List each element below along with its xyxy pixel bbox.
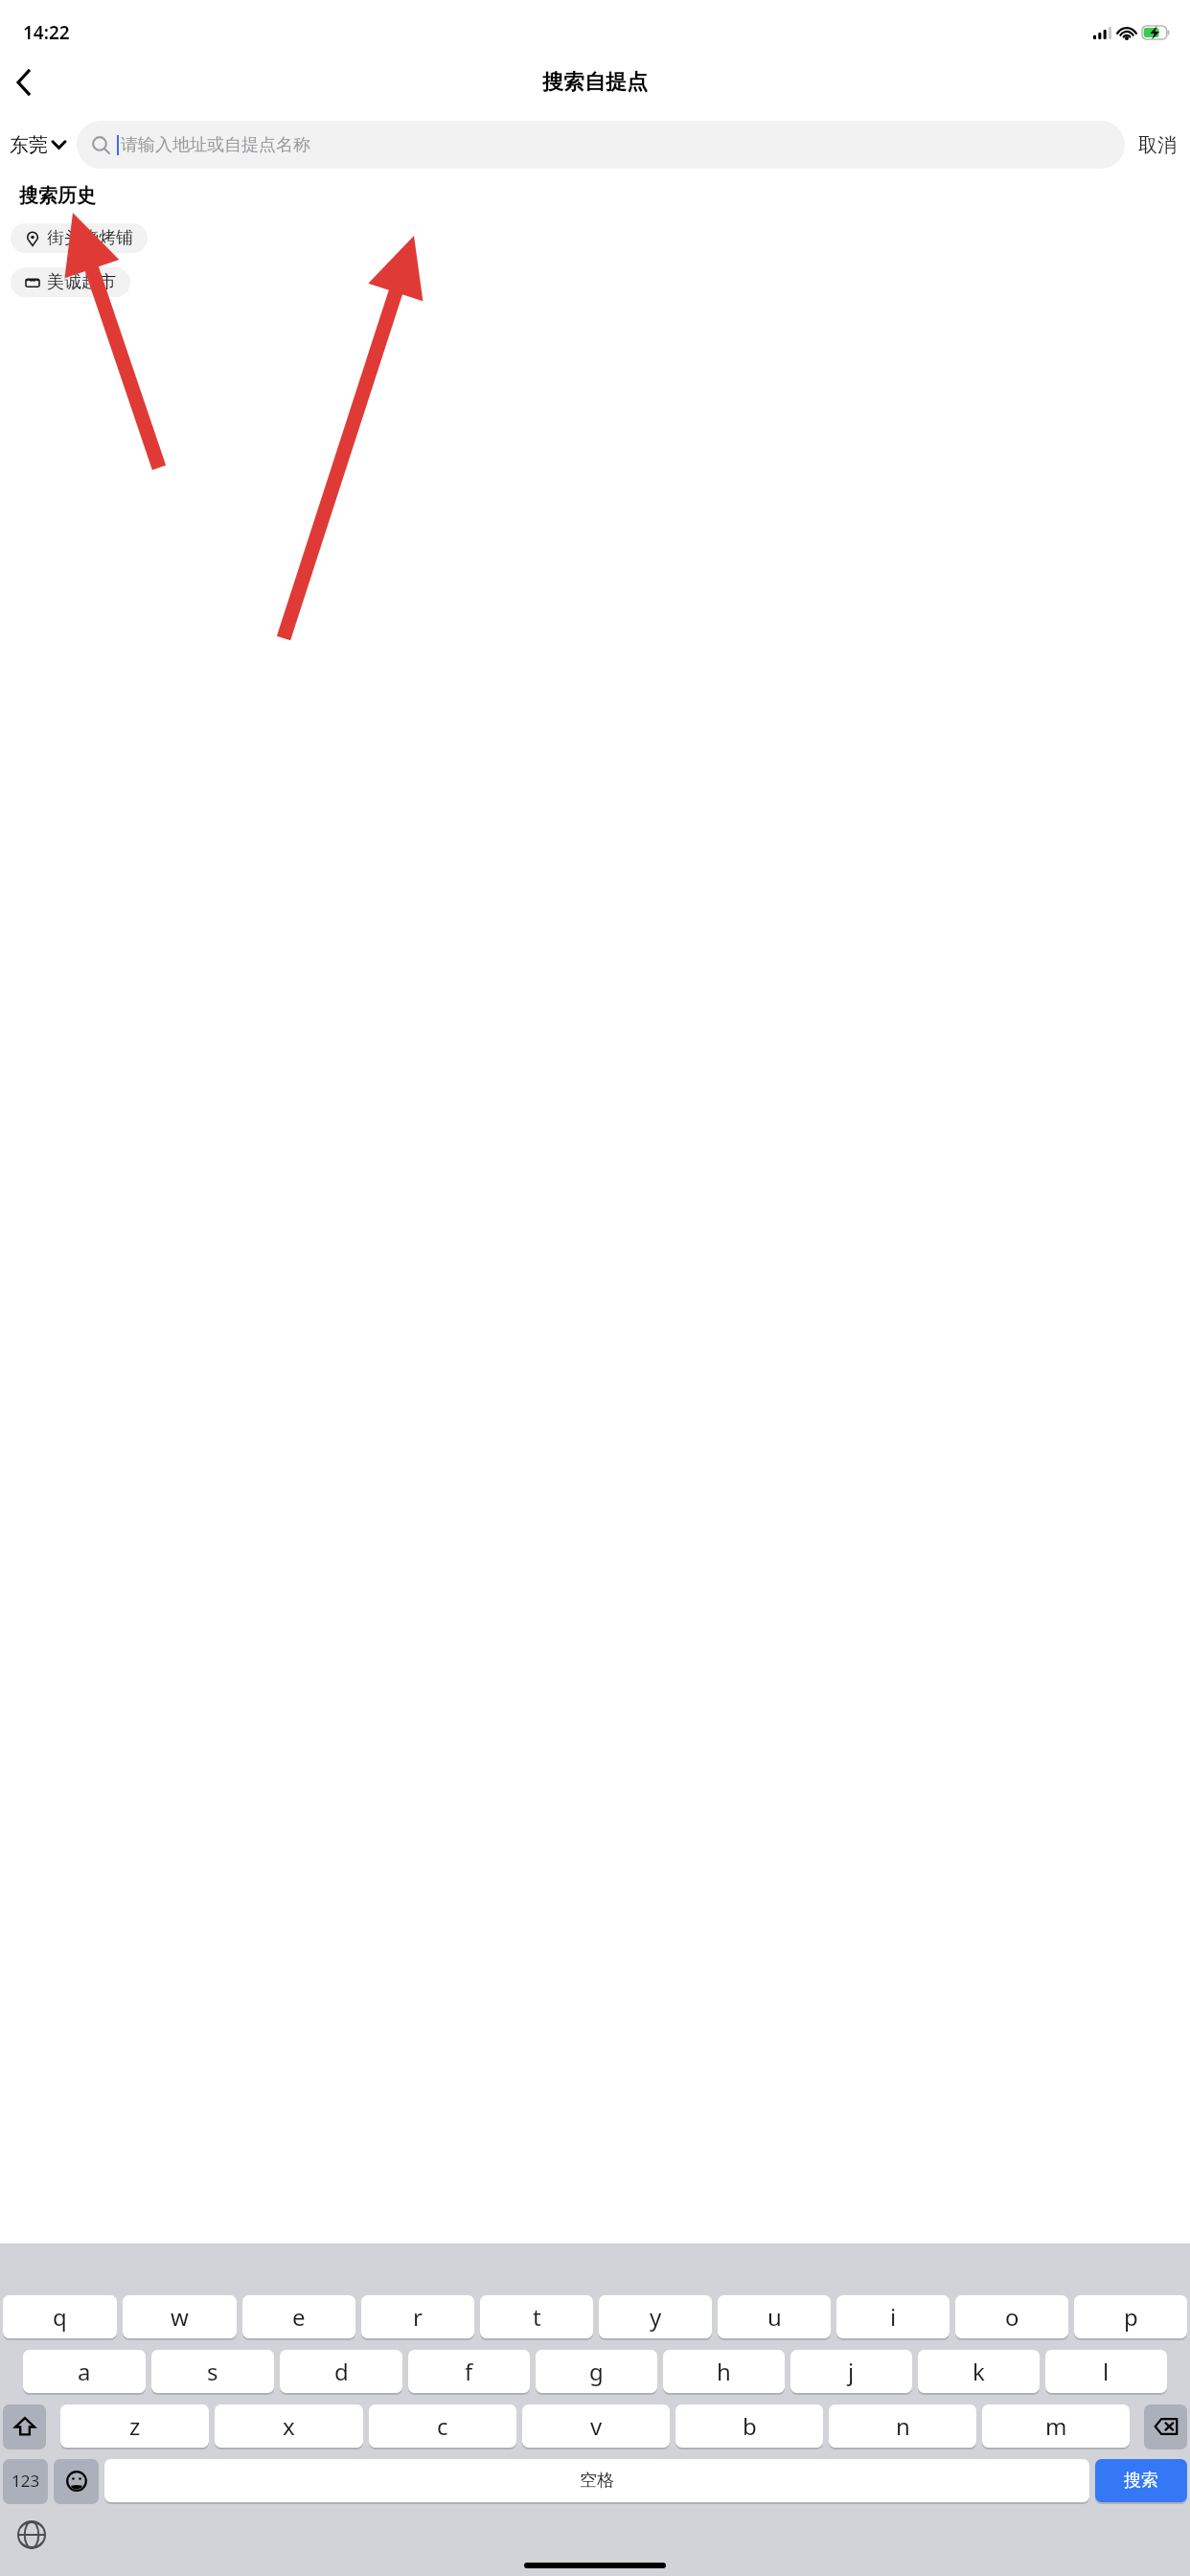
button[interactable]: g xyxy=(536,2350,657,2393)
staticText: m xyxy=(1045,2410,1067,2442)
button[interactable]: Back xyxy=(0,59,46,105)
staticText: b xyxy=(743,2410,757,2442)
button[interactable]: Backspace xyxy=(1144,2404,1187,2448)
staticText: u xyxy=(767,2301,782,2333)
staticText: 14:22 xyxy=(23,20,70,45)
button[interactable]: Change keyboard language xyxy=(15,2518,48,2551)
staticText: z xyxy=(129,2410,141,2442)
button[interactable]: w xyxy=(123,2295,237,2338)
button[interactable]: 123 xyxy=(3,2459,48,2502)
staticText: y xyxy=(650,2301,662,2333)
staticText: o xyxy=(1005,2301,1019,2333)
staticText: j xyxy=(848,2356,855,2387)
staticText: h xyxy=(717,2356,731,2387)
staticText: 取消 xyxy=(1138,133,1177,157)
button[interactable]: o xyxy=(955,2295,1068,2338)
button[interactable]: u xyxy=(718,2295,831,2338)
button[interactable]: e xyxy=(242,2295,355,2338)
staticText: q xyxy=(53,2301,67,2333)
button[interactable]: 请输入地址或自提点名称 xyxy=(77,121,1125,169)
button[interactable]: k xyxy=(918,2350,1040,2393)
staticText: c xyxy=(437,2410,448,2442)
staticText: 街头烧烤铺 xyxy=(47,227,133,249)
staticText: l xyxy=(1103,2356,1110,2387)
button[interactable]: h xyxy=(663,2350,785,2393)
staticText: a xyxy=(78,2356,91,2387)
button[interactable]: c xyxy=(369,2404,516,2448)
staticText: v xyxy=(590,2410,603,2442)
button[interactable]: d xyxy=(280,2350,402,2393)
button[interactable]: m xyxy=(982,2404,1130,2448)
staticText: n xyxy=(896,2410,910,2442)
staticText: t xyxy=(533,2301,541,2333)
button[interactable]: v xyxy=(522,2404,670,2448)
button[interactable]: 空格 xyxy=(104,2459,1089,2502)
staticText: f xyxy=(465,2356,473,2387)
staticText: d xyxy=(334,2356,349,2387)
staticText: w xyxy=(171,2301,189,2333)
staticText: p xyxy=(1124,2301,1138,2333)
button[interactable]: n xyxy=(829,2404,976,2448)
button[interactable]: 街头烧烤铺 xyxy=(11,223,148,253)
button[interactable]: Shift xyxy=(3,2404,46,2448)
staticText: 空格 xyxy=(580,2470,614,2492)
staticText: k xyxy=(973,2356,985,2387)
staticText: 搜索自提点 xyxy=(542,69,648,96)
staticText: g xyxy=(589,2356,604,2387)
button[interactable]: s xyxy=(151,2350,274,2393)
staticText: 搜索 xyxy=(1124,2470,1158,2492)
button[interactable]: p xyxy=(1074,2295,1187,2338)
button[interactable]: j xyxy=(790,2350,912,2393)
button[interactable]: Emoji xyxy=(54,2459,99,2502)
button[interactable]: l xyxy=(1045,2350,1167,2393)
staticText: 东莞 xyxy=(10,133,48,157)
staticText: 请输入地址或自提点名称 xyxy=(121,134,310,156)
staticText: i xyxy=(890,2301,897,2333)
button[interactable]: r xyxy=(361,2295,474,2338)
staticText: 美诚超市 xyxy=(47,271,116,293)
button[interactable]: y xyxy=(599,2295,712,2338)
button[interactable]: a xyxy=(23,2350,146,2393)
button[interactable]: 搜索 xyxy=(1095,2459,1187,2502)
button[interactable]: b xyxy=(675,2404,823,2448)
staticText: 搜索历史 xyxy=(19,184,96,208)
button[interactable]: q xyxy=(3,2295,117,2338)
staticText: 123 xyxy=(11,2470,40,2492)
button[interactable]: 取消 xyxy=(1138,121,1177,169)
staticText: r xyxy=(413,2301,423,2333)
staticText: e xyxy=(292,2301,306,2333)
button[interactable]: z xyxy=(60,2404,209,2448)
button[interactable]: 东莞 xyxy=(10,121,65,169)
button[interactable]: i xyxy=(836,2295,950,2338)
button[interactable]: t xyxy=(480,2295,593,2338)
button[interactable]: x xyxy=(215,2404,363,2448)
button[interactable]: f xyxy=(408,2350,530,2393)
staticText: x xyxy=(283,2410,295,2442)
button[interactable]: 美诚超市 xyxy=(11,267,130,297)
staticText: s xyxy=(207,2356,218,2387)
